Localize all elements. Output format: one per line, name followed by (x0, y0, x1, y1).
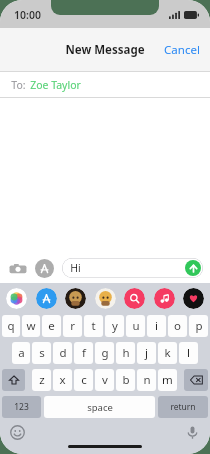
staticText: p (195, 318, 203, 334)
button[interactable]: x (53, 369, 72, 391)
staticText: t (91, 318, 96, 334)
staticText: 123 (14, 401, 29, 413)
button[interactable]: e (42, 315, 61, 337)
button[interactable]: n (137, 369, 156, 391)
button[interactable]: v (95, 369, 114, 391)
staticText: v (102, 372, 108, 388)
staticText: Zoe Taylor (30, 78, 81, 92)
staticText: k (164, 345, 171, 361)
staticText: n (143, 372, 151, 388)
button[interactable]: u (126, 315, 145, 337)
button[interactable]: z (32, 369, 51, 391)
button[interactable]: k (158, 342, 177, 364)
button[interactable]: Send (185, 260, 201, 276)
button[interactable]: space (44, 396, 155, 418)
button[interactable]: c (74, 369, 93, 391)
button[interactable]: Memoji sticker (95, 288, 116, 309)
button[interactable]: i (147, 315, 166, 337)
button[interactable]: App Store (36, 288, 57, 309)
staticText: i (155, 318, 158, 334)
staticText: o (174, 318, 181, 334)
button[interactable]: Cancel (154, 30, 210, 70)
staticText: Cancel (164, 42, 200, 58)
button[interactable]: Memoji (65, 288, 86, 309)
button[interactable]: h (116, 342, 135, 364)
button[interactable]: g (95, 342, 114, 364)
button[interactable]: Backspace (184, 369, 208, 391)
staticText: x (59, 372, 66, 388)
button[interactable]: Dictation (185, 425, 200, 440)
staticText: q (7, 318, 15, 334)
button[interactable]: f (74, 342, 93, 364)
staticText: space (87, 401, 113, 414)
staticText: j (145, 345, 148, 361)
button[interactable]: o (168, 315, 187, 337)
button[interactable]: d (53, 342, 72, 364)
staticText: s (39, 345, 45, 361)
button[interactable]: a (12, 342, 30, 364)
staticText: c (81, 372, 87, 388)
staticText: u (132, 318, 140, 334)
staticText: z (39, 372, 45, 388)
staticText: m (162, 372, 173, 388)
button[interactable]: Digital Touch (183, 288, 204, 309)
button[interactable]: j (137, 342, 156, 364)
staticText: New Message (65, 42, 145, 58)
staticText: y (112, 318, 118, 334)
staticText: d (59, 345, 67, 361)
button[interactable]: w (22, 315, 40, 337)
button[interactable]: Take photo (8, 259, 27, 278)
button[interactable]: Music (154, 288, 175, 309)
button[interactable]: r (63, 315, 82, 337)
button[interactable]: Photos (6, 288, 27, 309)
staticText: h (122, 345, 130, 361)
staticText: return (170, 401, 196, 413)
button[interactable]: b (116, 369, 135, 391)
button[interactable]: y (105, 315, 124, 337)
staticText: b (122, 372, 130, 388)
staticText: g (101, 345, 109, 361)
staticText: 10:00 (14, 8, 41, 22)
button[interactable]: To: (0, 72, 210, 98)
button[interactable]: return (158, 396, 208, 418)
staticText: w (26, 318, 36, 334)
staticText: l (187, 345, 190, 361)
button[interactable]: Shift (2, 369, 25, 391)
staticText: r (70, 318, 75, 334)
button[interactable]: 123 (2, 396, 41, 418)
button[interactable]: q (2, 315, 20, 337)
button[interactable]: Hi (62, 258, 203, 278)
staticText: e (48, 318, 55, 334)
button[interactable]: s (32, 342, 51, 364)
button[interactable]: Image search (124, 288, 145, 309)
staticText: Hi (70, 261, 81, 275)
staticText: To: (11, 78, 26, 92)
staticText: f (82, 345, 86, 361)
button[interactable]: iMessage apps (35, 259, 54, 278)
button[interactable]: l (179, 342, 198, 364)
button[interactable]: t (84, 315, 103, 337)
staticText: a (18, 345, 25, 361)
button[interactable]: p (189, 315, 208, 337)
button[interactable]: Emoji keyboard (10, 425, 25, 440)
button[interactable]: m (158, 369, 177, 391)
